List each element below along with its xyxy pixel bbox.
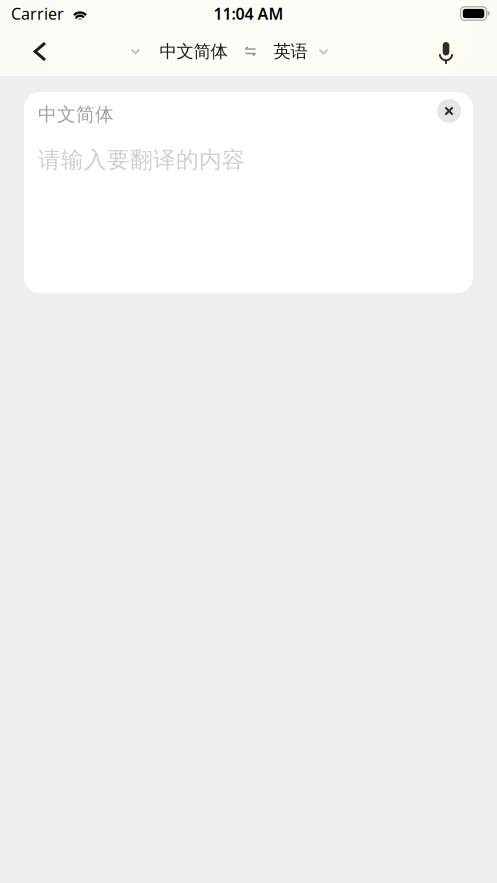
staticText: 请输入要翻译的内容 bbox=[38, 146, 245, 174]
button[interactable]: Swap languages bbox=[242, 35, 258, 67]
staticText: 中文简体 bbox=[38, 103, 114, 126]
staticText: Carrier bbox=[11, 3, 64, 24]
staticText: 英语 bbox=[273, 41, 307, 62]
button[interactable]: 英语 bbox=[273, 30, 328, 73]
button[interactable]: Voice input bbox=[424, 29, 468, 73]
button[interactable]: Clear text bbox=[429, 91, 469, 131]
staticText: 11:04 AM bbox=[213, 3, 283, 24]
button[interactable]: 中文简体 bbox=[130, 30, 227, 73]
staticText: 中文简体 bbox=[159, 41, 227, 62]
button[interactable]: Back bbox=[18, 29, 62, 73]
